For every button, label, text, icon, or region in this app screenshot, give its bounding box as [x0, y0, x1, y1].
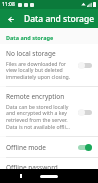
staticText: 11:08 [2, 1, 15, 8]
button[interactable]: Offline mode [0, 137, 98, 157]
button[interactable]: Toggle on [77, 142, 93, 152]
button[interactable]: Remote encryption [0, 87, 98, 136]
staticText: Data can be stored locally and encrypted… [6, 103, 73, 131]
button[interactable]: Toggle off [77, 107, 93, 117]
staticText: Data and storage [24, 13, 95, 25]
staticText: No local storage [6, 49, 56, 58]
staticText: Remote encryption [6, 92, 65, 101]
button[interactable]: No local storage [0, 44, 98, 86]
staticText: Offline password [6, 163, 58, 169]
button[interactable]: Toggle off [77, 60, 93, 70]
staticText: Data and storage [6, 34, 54, 41]
staticText: Offline mode [6, 143, 46, 152]
button[interactable]: Back [4, 12, 18, 26]
button[interactable]: Home [40, 175, 58, 178]
staticText: Files are downloaded for view locally bu… [6, 60, 73, 81]
button[interactable]: Offline password [0, 158, 98, 169]
